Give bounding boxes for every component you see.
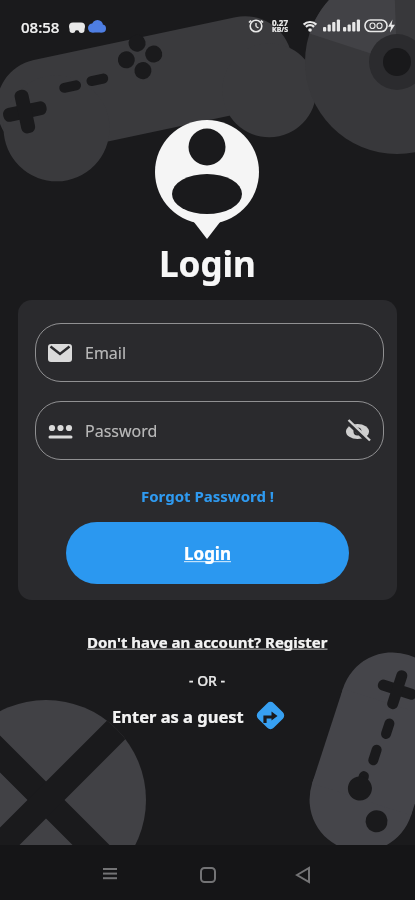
button[interactable]: Enter as a guest: [0, 700, 406, 731]
button[interactable]: Don't have an account? Register: [87, 632, 328, 652]
staticText: Enter as a guest: [112, 705, 244, 727]
staticText: - OR -: [189, 671, 226, 690]
staticText: Login: [159, 240, 256, 288]
button[interactable]: Email: [35, 323, 384, 382]
button[interactable]: [256, 850, 353, 895]
staticText: Password: [85, 420, 158, 442]
staticText: 0.27: [272, 17, 288, 28]
staticText: KB/S: [272, 25, 289, 35]
button[interactable]: Password: [35, 401, 384, 460]
button[interactable]: [61, 850, 158, 895]
button[interactable]: Forgot Password !: [141, 486, 275, 506]
staticText: Email: [85, 342, 127, 364]
staticText: 08:58: [21, 17, 60, 37]
button[interactable]: [159, 850, 256, 895]
button[interactable]: [344, 420, 371, 442]
staticText: Login: [184, 542, 232, 565]
button[interactable]: Login: [66, 522, 349, 584]
